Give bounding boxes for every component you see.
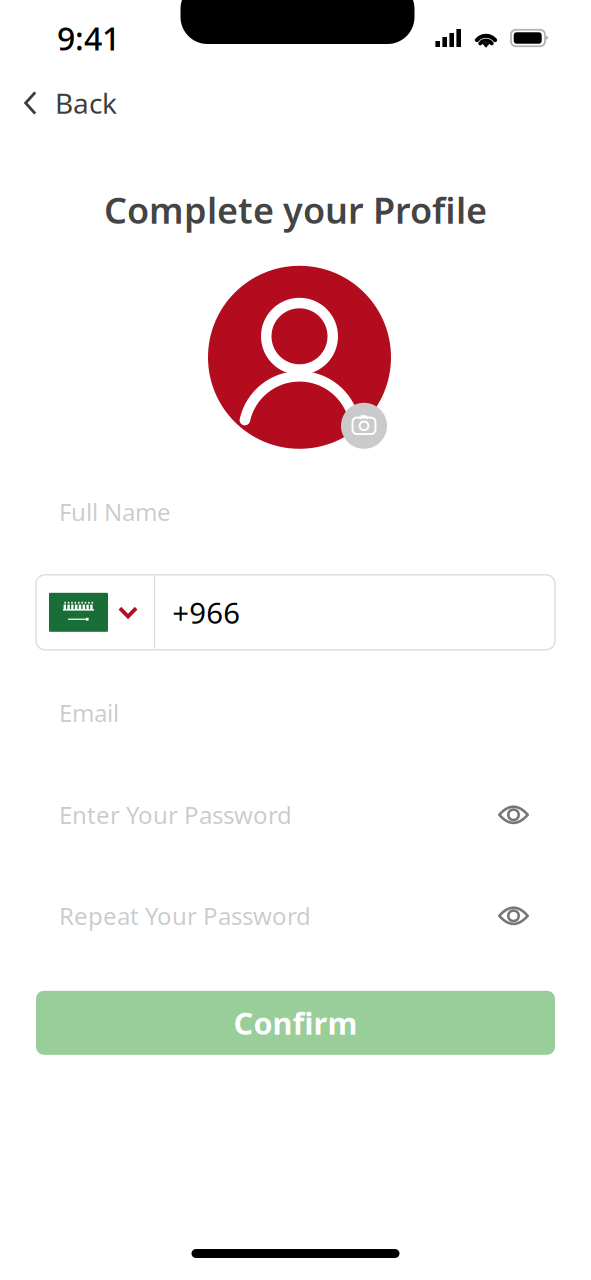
staticText: Email: [59, 697, 119, 729]
staticText: Enter Your Password: [59, 799, 292, 831]
button[interactable]: Back: [0, 75, 117, 131]
button[interactable]: Confirm: [36, 991, 555, 1055]
button[interactable]: Show password: [498, 804, 529, 826]
button[interactable]: Change profile photo: [208, 266, 391, 449]
staticText: Confirm: [233, 1002, 357, 1043]
button[interactable]: Select country code: [36, 576, 154, 649]
button[interactable]: Show password: [498, 905, 529, 927]
staticText: +966: [172, 593, 240, 632]
staticText: Complete your Profile: [104, 186, 487, 234]
staticText: Back: [55, 84, 117, 122]
staticText: 9:41: [57, 17, 120, 59]
staticText: Full Name: [59, 496, 171, 528]
staticText: Repeat Your Password: [59, 900, 311, 932]
